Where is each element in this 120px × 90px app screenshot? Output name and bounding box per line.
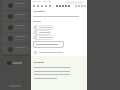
button[interactable] <box>2 0 30 10</box>
button[interactable] <box>33 41 64 48</box>
button[interactable] <box>33 25 54 30</box>
button[interactable] <box>33 30 51 35</box>
button[interactable] <box>2 22 30 32</box>
button[interactable] <box>2 33 30 43</box>
staticText: Question <box>34 9 45 12</box>
button[interactable] <box>2 44 30 54</box>
staticText: Solution <box>34 60 44 63</box>
button[interactable] <box>33 35 54 40</box>
button[interactable] <box>2 11 30 21</box>
button[interactable] <box>34 50 63 54</box>
button[interactable]: Home <box>7 59 22 66</box>
